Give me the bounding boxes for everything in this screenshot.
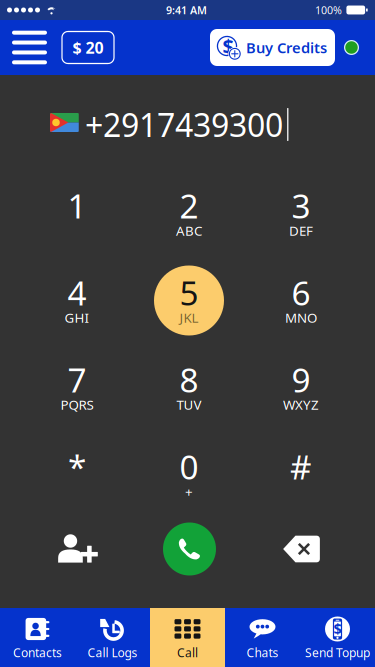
button[interactable]: Add contact — [21, 518, 133, 580]
staticText: 1 — [67, 183, 86, 228]
button[interactable]: 9 — [245, 344, 357, 431]
staticText: +2917439300 — [85, 103, 283, 146]
button[interactable]: 7 — [21, 344, 133, 431]
staticText: 100% — [315, 3, 342, 17]
staticText: Chats — [246, 644, 278, 660]
button[interactable]: 2 — [133, 170, 245, 257]
staticText: $ — [333, 618, 341, 638]
staticText: GHI — [64, 309, 89, 326]
staticText: JKL — [179, 309, 198, 326]
staticText: * — [68, 444, 86, 489]
staticText: Contacts — [13, 644, 62, 660]
staticText: Buy Credits — [246, 38, 327, 57]
staticText: $ — [222, 33, 233, 59]
button[interactable]: 5 — [133, 257, 245, 344]
button[interactable]: * — [21, 431, 133, 518]
staticText: 2 — [179, 183, 198, 228]
button[interactable]: Chats — [225, 608, 300, 667]
staticText: 6 — [291, 270, 310, 315]
button[interactable]: 4 — [21, 257, 133, 344]
staticText: WXYZ — [283, 396, 319, 413]
button[interactable]: 1 — [21, 170, 133, 257]
button[interactable]: $ 20 — [62, 31, 114, 63]
staticText: DEF — [289, 222, 313, 239]
staticText: 9 — [291, 357, 310, 402]
staticText: ABC — [176, 222, 202, 239]
staticText: PQRS — [60, 396, 93, 413]
button[interactable]: Contacts — [0, 608, 75, 667]
staticText: 5 — [179, 270, 198, 315]
staticText: Send Topup — [305, 644, 370, 660]
staticText: 9:41 AM — [166, 3, 207, 17]
button[interactable]: Delete — [245, 518, 357, 580]
button[interactable]: Menu — [0, 20, 62, 75]
staticText: + — [185, 483, 193, 500]
staticText: Call — [177, 644, 198, 660]
button[interactable]: # — [245, 431, 357, 518]
staticText: 8 — [179, 357, 198, 402]
button[interactable]: 8 — [133, 344, 245, 431]
staticText: # — [290, 444, 312, 489]
staticText: TUV — [176, 396, 201, 413]
staticText: 4 — [67, 270, 86, 315]
staticText: 7 — [67, 357, 86, 402]
button[interactable]: 3 — [245, 170, 357, 257]
button[interactable]: Call — [133, 518, 245, 580]
button[interactable]: Call Logs — [75, 608, 150, 667]
staticText: 3 — [291, 183, 310, 228]
staticText: MNO — [285, 309, 317, 326]
staticText: Call Logs — [87, 644, 137, 660]
button[interactable]: 0 — [133, 431, 245, 518]
staticText: $ 20 — [72, 37, 103, 58]
button[interactable]: $ — [300, 608, 375, 667]
button[interactable]: Call — [150, 608, 225, 667]
button[interactable]: 6 — [245, 257, 357, 344]
button[interactable]: $ — [210, 29, 335, 66]
staticText: 0 — [179, 444, 198, 489]
